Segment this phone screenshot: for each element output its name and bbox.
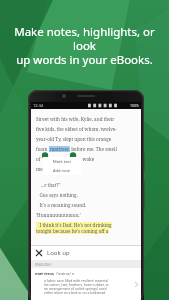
button[interactable]: Mark text	[43, 157, 81, 166]
staticText: Gus says nothing.	[36, 192, 78, 198]
staticText: five kids, the eldest of whom, twelve-	[36, 126, 117, 132]
staticText: ENGLISH	[35, 262, 51, 267]
staticText: n.	[72, 271, 76, 276]
staticText: foam	[36, 146, 49, 152]
staticText: before me. The smell	[70, 146, 117, 152]
staticText: Add note	[53, 168, 71, 173]
staticText: Look up	[47, 249, 70, 257]
staticText: Make notes, highlights, or look up words…	[8, 24, 161, 67]
staticText: tonight because he's coming off a	[36, 228, 109, 234]
button[interactable]: Next definition	[132, 271, 140, 297]
staticText: Mark text	[53, 159, 71, 164]
button[interactable]: Close look up	[31, 246, 141, 260]
staticText: ...r that?"	[36, 182, 61, 188]
staticText: me	[36, 166, 43, 172]
staticText: a fabric case filled with resilient mate…	[44, 278, 109, 295]
staticText: of up but what woke	[36, 156, 95, 162]
staticText: Street with his wife, Kylie, and their	[36, 116, 115, 122]
staticText: /ˈmatrəs/	[56, 271, 71, 276]
staticText: mattress	[50, 146, 69, 152]
staticText: mat·tress	[35, 271, 55, 276]
button[interactable]: Close look up	[31, 246, 47, 260]
staticText: 100%	[130, 103, 139, 108]
staticText: year-old Ty, slept upon this orange	[36, 136, 112, 142]
staticText: 12:34	[33, 103, 44, 108]
staticText: 'Huuuuuuuuuuuuu.'	[36, 212, 81, 218]
staticText: It's a moaning sound.	[36, 202, 87, 208]
staticText: I think it's Dad. He's not drinking	[36, 222, 112, 228]
button[interactable]: Add note	[43, 166, 81, 175]
